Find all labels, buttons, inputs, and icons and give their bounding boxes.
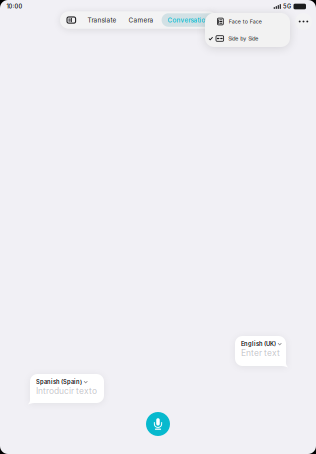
staticText: Side by Side — [228, 35, 258, 42]
button[interactable]: Camera — [123, 11, 160, 29]
staticText: Introducir texto — [36, 386, 97, 396]
button[interactable]: Spanish (Spain) — [30, 374, 104, 406]
staticText: 10:00 — [6, 3, 22, 10]
button[interactable]: English (UK) — [235, 336, 286, 369]
button[interactable]: Conversation — [160, 11, 218, 29]
button[interactable]: More — [295, 13, 312, 30]
staticText: English (UK) — [241, 340, 276, 347]
button[interactable]: Face to Face — [205, 13, 290, 30]
staticText: Camera — [129, 16, 154, 24]
staticText: Conversation — [168, 16, 210, 24]
staticText: Spanish (Spain) — [36, 378, 82, 385]
button[interactable]: Translate — [82, 11, 123, 29]
button[interactable]: Side by Side — [205, 30, 290, 47]
staticText: Translate — [88, 16, 117, 24]
button[interactable]: Start conversation — [146, 412, 170, 436]
staticText: Face to Face — [229, 18, 262, 25]
staticText: Enter text — [241, 348, 280, 358]
button[interactable]: Show Sidebar — [60, 11, 82, 29]
staticText: 5G — [283, 3, 291, 10]
